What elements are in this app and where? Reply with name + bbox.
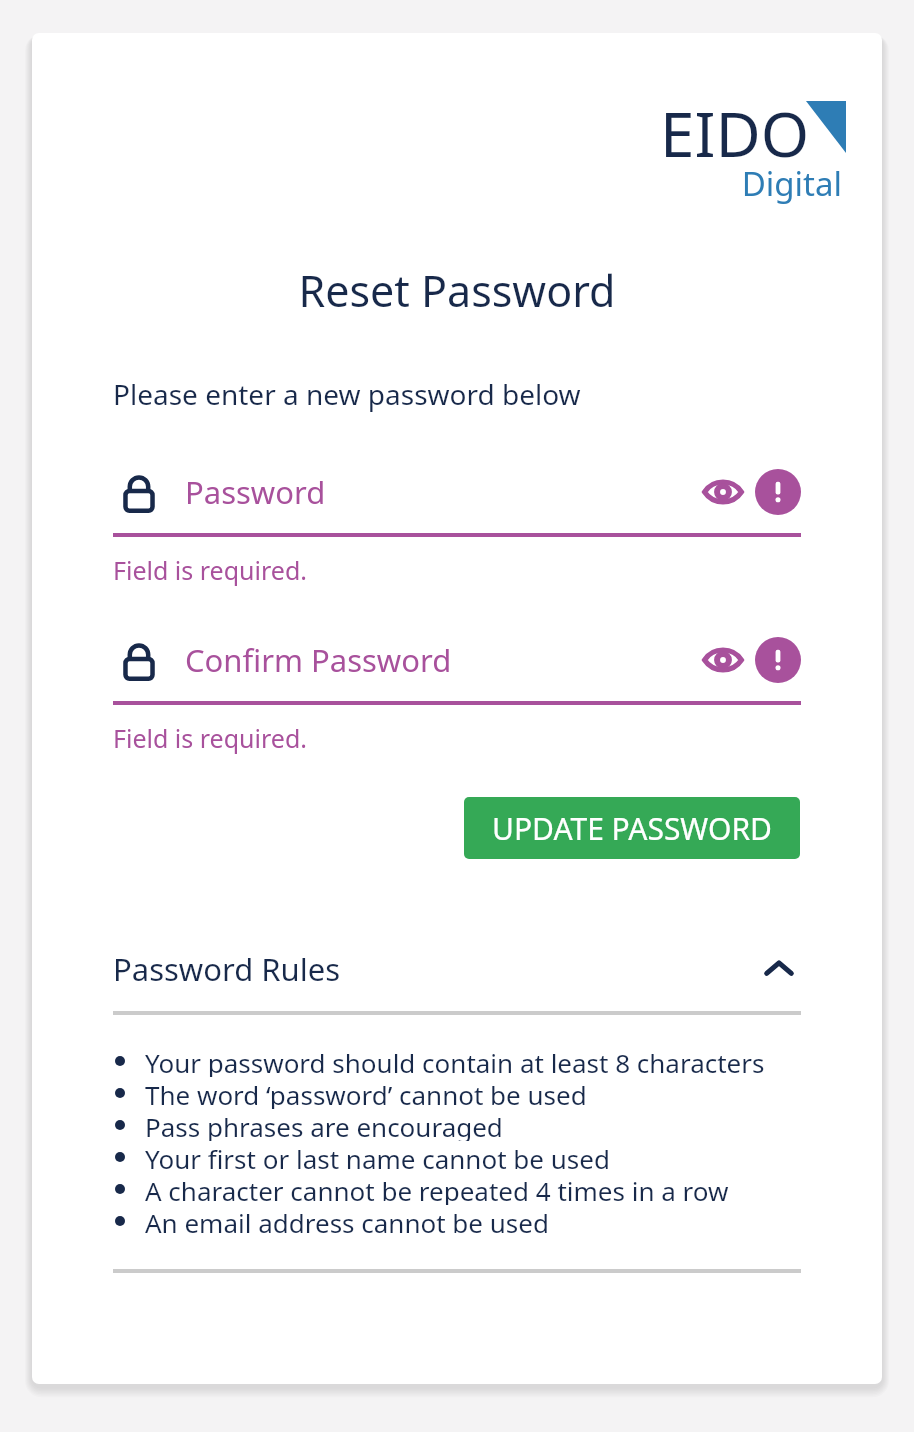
- staticText: Reset Password: [32, 261, 882, 320]
- button[interactable]: Error: field is required: [755, 637, 801, 683]
- staticText: An email address cannot be used: [145, 1205, 549, 1237]
- button[interactable]: Show confirm password: [695, 632, 751, 688]
- other: Collapse password rules: [757, 947, 801, 991]
- staticText: The word ‘password’ cannot be used: [145, 1077, 587, 1109]
- button[interactable]: Password Rules: [113, 931, 801, 1007]
- staticText: EIDO: [660, 91, 810, 175]
- staticText: Your password should contain at least 8 …: [145, 1045, 765, 1077]
- staticText: Confirm Password: [185, 639, 452, 681]
- staticText: A character cannot be repeated 4 times i…: [145, 1173, 729, 1205]
- button[interactable]: Error: field is required: [755, 469, 801, 515]
- staticText: Please enter a new password below: [113, 375, 581, 413]
- staticText: Digital: [660, 161, 842, 206]
- staticText: Password: [185, 471, 326, 513]
- button[interactable]: Password: [113, 451, 801, 533]
- staticText: UPDATE PASSWORD: [492, 808, 772, 849]
- staticText: Password Rules: [113, 948, 341, 990]
- staticText: Pass phrases are encouraged: [145, 1109, 503, 1141]
- button[interactable]: Confirm Password: [113, 619, 801, 701]
- button[interactable]: UPDATE PASSWORD: [464, 797, 800, 859]
- staticText: Field is required.: [113, 721, 307, 755]
- button[interactable]: Show password: [695, 464, 751, 520]
- staticText: Field is required.: [113, 553, 307, 587]
- staticText: Your first or last name cannot be used: [145, 1141, 610, 1173]
